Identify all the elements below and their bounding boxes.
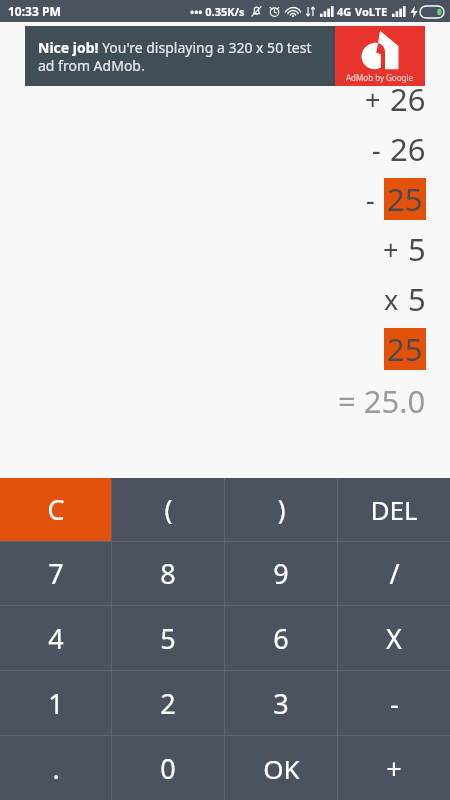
- button[interactable]: .: [0, 736, 111, 800]
- staticText: +: [383, 231, 399, 268]
- button[interactable]: 0: [112, 736, 224, 800]
- staticText: 25: [390, 28, 426, 70]
- staticText: -: [390, 685, 399, 722]
- staticText: 2: [160, 685, 176, 722]
- staticText: +: [386, 750, 402, 787]
- staticText: Nice job! You're displaying a 320 x 50 t…: [38, 38, 329, 75]
- staticText: 10:33 PM: [8, 3, 61, 19]
- staticText: 26: [390, 128, 426, 170]
- staticText: ••• 0.35K/s: [190, 4, 245, 19]
- staticText: 7: [48, 555, 64, 592]
- button[interactable]: +: [338, 736, 450, 800]
- button[interactable]: 5: [112, 606, 224, 670]
- staticText: /: [389, 555, 400, 592]
- staticText: 6: [273, 620, 289, 657]
- staticText: DEL: [370, 492, 418, 527]
- button[interactable]: /: [338, 542, 450, 605]
- staticText: 1: [48, 685, 64, 722]
- button[interactable]: ): [225, 478, 337, 541]
- button[interactable]: -: [338, 671, 450, 735]
- staticText: ): [277, 491, 286, 528]
- staticText: AdMob by Google: [346, 72, 414, 83]
- button[interactable]: 2: [112, 671, 224, 735]
- button[interactable]: DEL: [338, 478, 450, 541]
- staticText: VoLTE: [355, 4, 388, 19]
- staticText: 9: [273, 555, 289, 592]
- staticText: C: [47, 491, 65, 528]
- button[interactable]: 1: [0, 671, 111, 735]
- button[interactable]: 3: [225, 671, 337, 735]
- staticText: 26: [390, 78, 426, 120]
- staticText: 25: [387, 328, 423, 370]
- staticText: (: [164, 491, 173, 528]
- button[interactable]: X: [338, 606, 450, 670]
- button[interactable]: 6: [225, 606, 337, 670]
- staticText: 4: [48, 620, 64, 657]
- staticText: x: [384, 281, 399, 318]
- staticText: 4G: [337, 4, 352, 19]
- button[interactable]: OK: [225, 736, 337, 800]
- staticText: 5: [408, 228, 426, 270]
- button[interactable]: C: [0, 478, 111, 541]
- staticText: .: [52, 750, 60, 787]
- button[interactable]: 8: [112, 542, 224, 605]
- staticText: 25: [387, 178, 423, 220]
- staticText: +: [365, 81, 381, 118]
- staticText: 5: [160, 620, 176, 657]
- staticText: 0: [160, 750, 176, 787]
- staticText: X: [386, 620, 402, 657]
- staticText: -: [372, 131, 381, 168]
- button[interactable]: 9: [225, 542, 337, 605]
- staticText: -: [366, 181, 375, 218]
- staticText: OK: [263, 751, 300, 786]
- button[interactable]: 4: [0, 606, 111, 670]
- staticText: 8: [160, 555, 176, 592]
- button[interactable]: 7: [0, 542, 111, 605]
- button[interactable]: Advertisement: [25, 26, 425, 86]
- staticText: = 25.0: [338, 380, 426, 422]
- staticText: 5: [408, 278, 426, 320]
- button[interactable]: (: [112, 478, 224, 541]
- staticText: 3: [273, 685, 289, 722]
